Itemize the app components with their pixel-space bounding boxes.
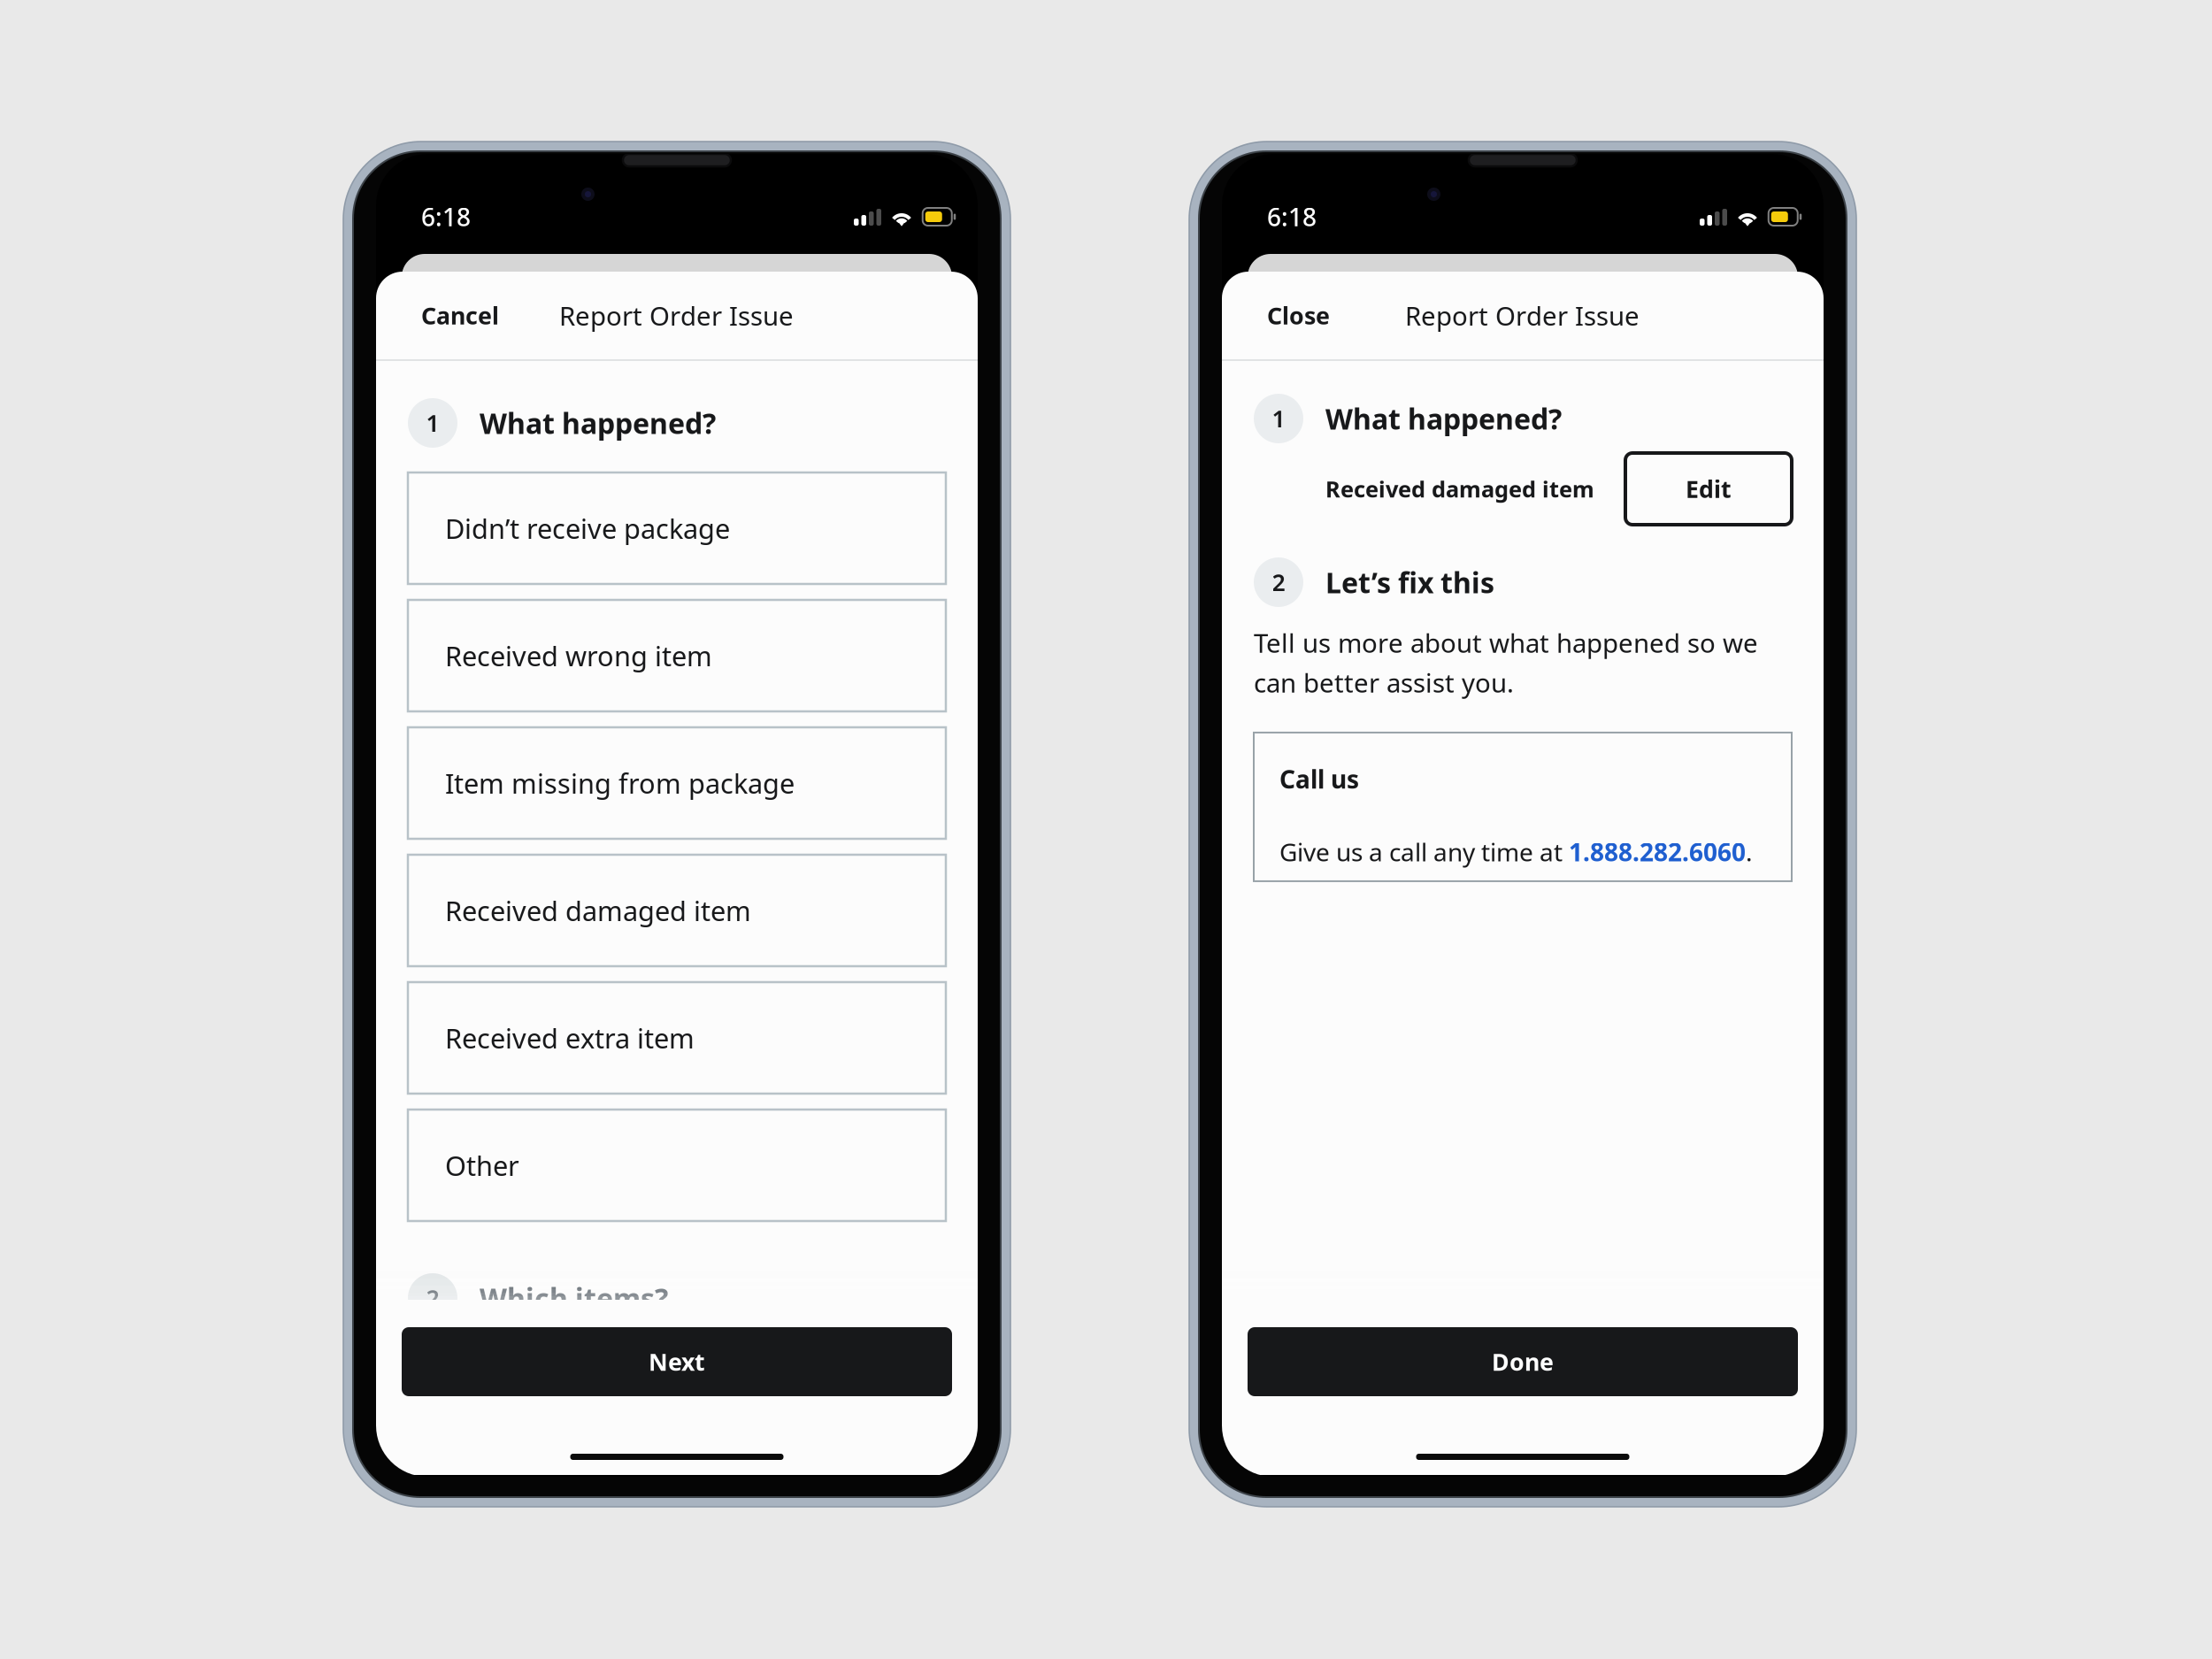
- staticText: Done: [1492, 1346, 1554, 1377]
- staticText: 2: [426, 1282, 439, 1314]
- staticText: Item missing from package: [445, 765, 795, 801]
- staticText: 1: [1272, 403, 1285, 434]
- button[interactable]: Received wrong item: [408, 600, 946, 711]
- staticText: What happened?: [1325, 400, 1562, 437]
- button[interactable]: Next: [402, 1327, 952, 1396]
- staticText: Close: [1267, 300, 1330, 331]
- staticText: Cancel: [421, 300, 499, 331]
- button[interactable]: Give us a call any time at 1.888.282.606…: [1279, 835, 1753, 868]
- staticText: Report Order Issue: [559, 298, 794, 333]
- staticText: Received damaged item: [1325, 474, 1594, 504]
- staticText: Which items?: [480, 1279, 668, 1317]
- button[interactable]: Edit: [1625, 453, 1792, 525]
- button[interactable]: Done: [1248, 1327, 1798, 1396]
- button[interactable]: Didn’t receive package: [408, 472, 946, 584]
- staticText: Give us a call any time at 1.888.282.606…: [1279, 835, 1753, 868]
- button[interactable]: Other: [408, 1110, 946, 1221]
- staticText: Next: [649, 1346, 705, 1377]
- staticText: Report Order Issue: [1405, 298, 1640, 333]
- staticText: 6:18: [1267, 200, 1317, 233]
- staticText: 2: [1272, 567, 1285, 598]
- staticText: Edit: [1686, 473, 1732, 505]
- button[interactable]: Received extra item: [408, 982, 946, 1094]
- staticText: Didn’t receive package: [445, 510, 730, 546]
- button[interactable]: Close: [1222, 280, 1358, 351]
- button[interactable]: Received damaged item: [408, 855, 946, 966]
- staticText: 1: [426, 407, 439, 439]
- staticText: Received wrong item: [445, 638, 712, 674]
- staticText: Received damaged item: [445, 892, 751, 928]
- button[interactable]: Item missing from package: [408, 727, 946, 839]
- staticText: Tell us more about what happened so we c…: [1254, 626, 1758, 700]
- staticText: Call us: [1279, 763, 1359, 796]
- staticText: Received extra item: [445, 1020, 695, 1056]
- button[interactable]: Cancel: [376, 280, 527, 351]
- staticText: 6:18: [421, 200, 471, 233]
- staticText: Other: [445, 1147, 519, 1183]
- staticText: What happened?: [480, 404, 716, 442]
- staticText: Let’s fix this: [1325, 563, 1494, 601]
